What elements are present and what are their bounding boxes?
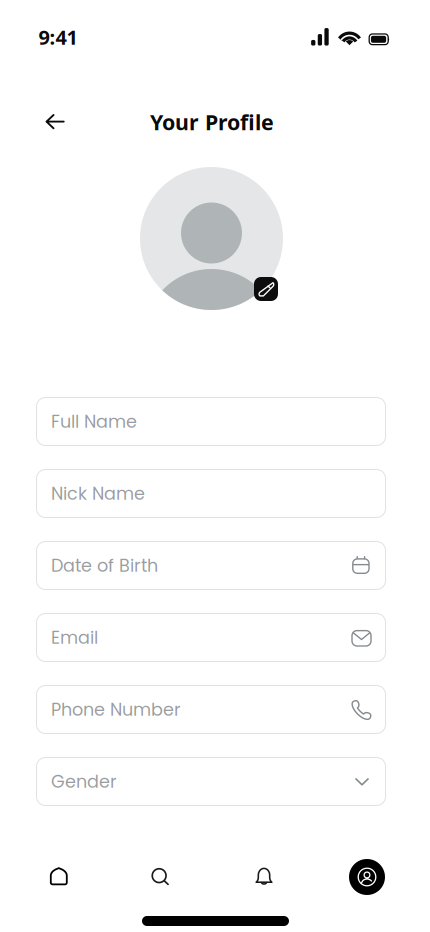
button[interactable]: Date of Birth <box>36 541 386 590</box>
button[interactable]: Search <box>129 850 191 902</box>
staticText: 9:41 <box>38 24 77 50</box>
staticText: Gender <box>51 769 117 794</box>
button[interactable]: Profile <box>345 855 389 899</box>
staticText: Email <box>51 625 98 650</box>
button[interactable]: Full Name <box>36 397 386 446</box>
button[interactable]: Edit profile photo <box>254 277 278 301</box>
button[interactable]: Home <box>28 850 90 902</box>
staticText: Your Profile <box>150 108 274 136</box>
button[interactable]: Phone Number <box>36 685 386 734</box>
staticText: Full Name <box>51 409 137 434</box>
button[interactable]: Notifications <box>233 850 295 902</box>
staticText: Nick Name <box>51 481 145 506</box>
button[interactable]: Back <box>33 100 77 144</box>
button[interactable]: Gender <box>36 757 386 806</box>
staticText: Date of Birth <box>51 553 158 578</box>
staticText: Phone Number <box>51 697 181 722</box>
button[interactable]: Nick Name <box>36 469 386 518</box>
button[interactable]: Email <box>36 613 386 662</box>
